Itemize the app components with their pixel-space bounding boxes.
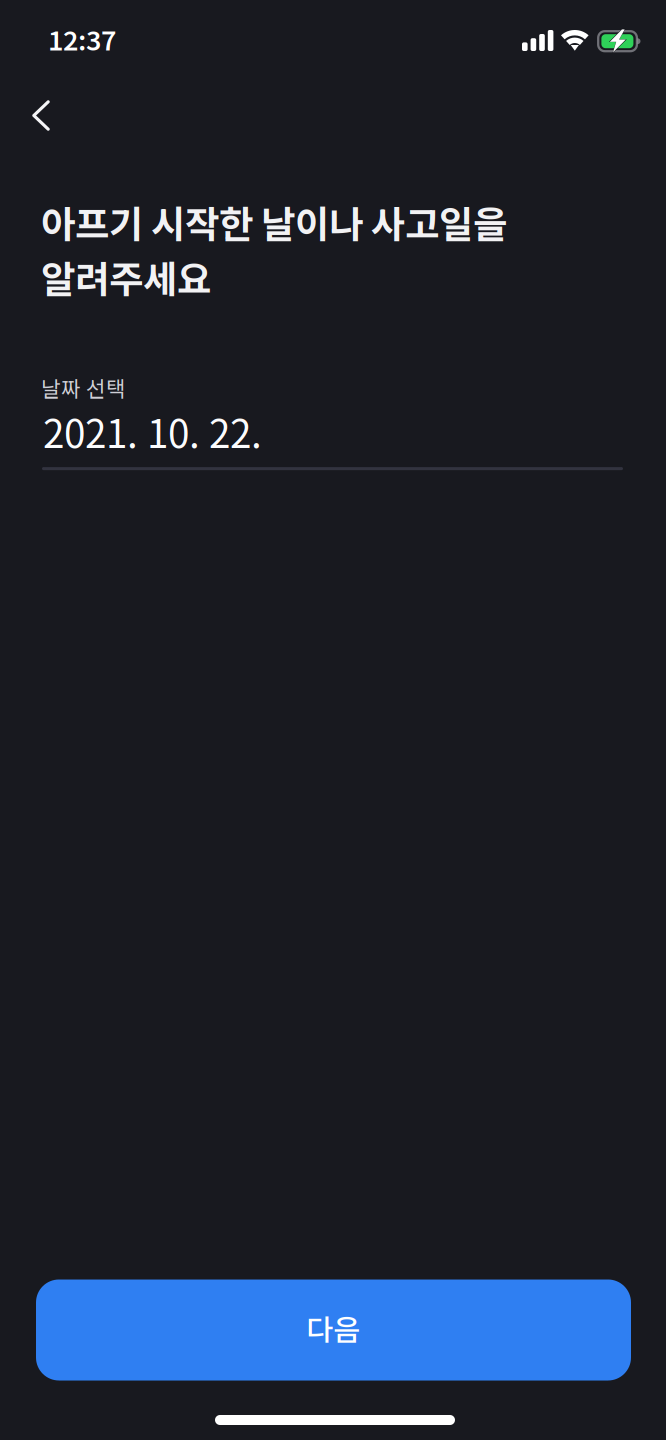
button[interactable]: 다음 [36, 1279, 631, 1380]
staticText: 다음 [306, 1307, 360, 1349]
staticText: 12:37 [48, 19, 116, 58]
staticText: 2021. 10. 22. [43, 403, 262, 459]
button[interactable]: 날짜 선택 [41, 372, 624, 470]
staticText: 아프기 시작한 날이나 사고일을 [41, 195, 507, 249]
staticText: 알려주세요 [41, 250, 211, 304]
staticText: 날짜 선택 [41, 372, 126, 403]
button[interactable]: Back [0, 62, 74, 145]
